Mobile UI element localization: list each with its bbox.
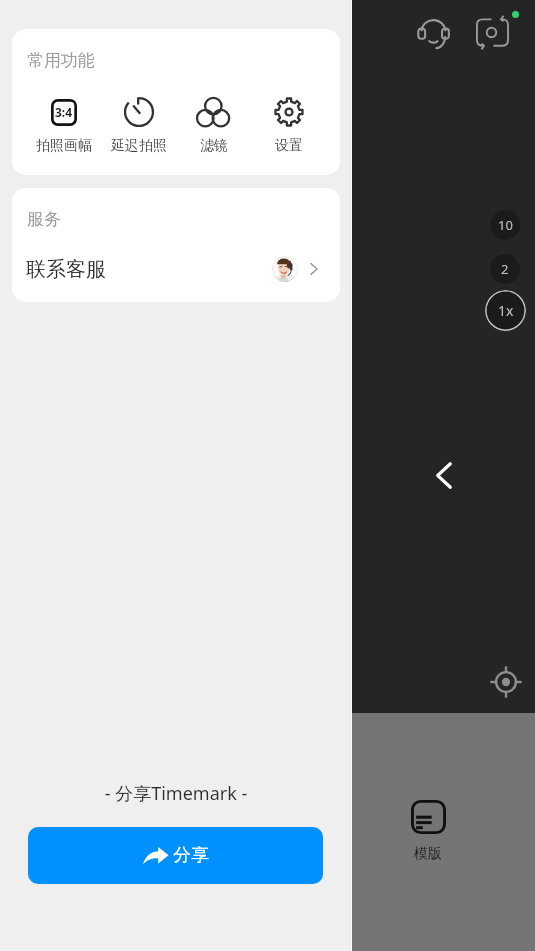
staticText: 设置 [275,137,303,155]
button[interactable]: Location [483,659,528,704]
button[interactable]: 分享 [28,827,323,884]
staticText: - 分享Timemark - [0,781,352,806]
button[interactable]: Switch camera [470,7,514,51]
button[interactable]: Customer service [414,13,450,49]
button[interactable]: 联系客服 [12,243,340,295]
button[interactable]: 1x [485,290,526,331]
staticText: 延迟拍照 [111,137,167,155]
button[interactable]: 模版 [400,796,456,867]
staticText: 滤镜 [200,137,228,155]
button[interactable]: 设置 [251,97,326,155]
staticText: 常用功能 [27,50,95,71]
staticText: 1x [498,301,514,320]
staticText: 3:4 [55,104,73,120]
staticText: 2 [501,260,509,278]
staticText: 分享 [173,844,209,867]
button[interactable]: 滤镜 [176,97,251,155]
button[interactable]: 延迟拍照 [101,97,176,155]
button[interactable]: 10 [490,210,520,240]
staticText: 拍照画幅 [36,137,92,155]
button[interactable]: Collapse panel [421,452,467,498]
staticText: 模版 [414,845,442,863]
staticText: 10 [498,216,513,234]
staticText: 服务 [27,209,61,230]
button[interactable]: 2 [490,254,520,284]
staticText: 联系客服 [26,257,106,282]
button[interactable]: 3:4 [26,97,101,155]
